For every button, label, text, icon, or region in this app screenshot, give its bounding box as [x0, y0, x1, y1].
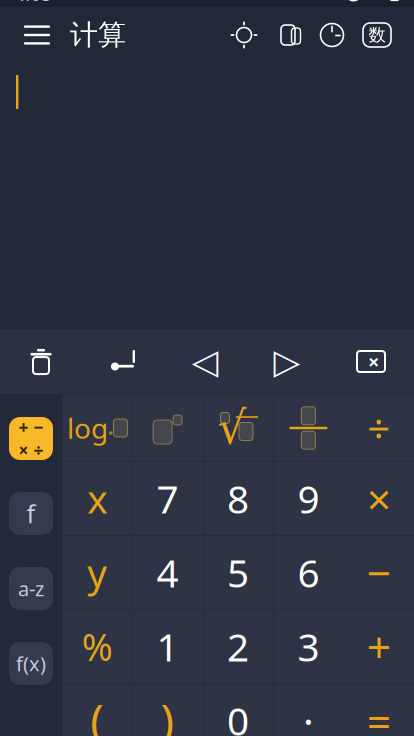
button[interactable]: =	[344, 684, 414, 736]
staticText: +	[367, 618, 391, 675]
staticText: ÷	[367, 401, 390, 454]
button[interactable]: f(x)	[0, 626, 62, 701]
staticText: ×	[367, 470, 391, 527]
staticText: 2	[227, 621, 249, 672]
staticText: 9	[297, 473, 319, 524]
button[interactable]: )	[132, 684, 203, 736]
staticText: x	[87, 473, 107, 524]
staticText: √	[217, 402, 246, 454]
button[interactable]: Menu	[14, 12, 60, 58]
button[interactable]: Move left	[164, 329, 246, 393]
staticText: 4	[157, 547, 179, 598]
button[interactable]: 3	[273, 610, 344, 683]
staticText: log	[67, 409, 108, 447]
button[interactable]: 0	[203, 684, 273, 736]
button[interactable]: f	[0, 476, 62, 551]
staticText: × ÷	[18, 438, 43, 461]
staticText: f	[26, 497, 35, 530]
button[interactable]: + −	[0, 401, 62, 476]
button[interactable]: (	[62, 684, 132, 736]
button[interactable]: √	[203, 395, 273, 461]
staticText: ×	[368, 348, 379, 375]
staticText: =	[367, 692, 391, 736]
button[interactable]: y	[62, 536, 132, 609]
button[interactable]: 5	[203, 536, 273, 609]
button[interactable]: −	[344, 536, 414, 609]
staticText: %	[82, 622, 113, 671]
button[interactable]: Brightness	[222, 12, 266, 58]
button[interactable]: log	[62, 395, 132, 461]
button[interactable]: 8	[203, 462, 273, 535]
button[interactable]: ×	[344, 462, 414, 535]
button[interactable]: x	[62, 462, 132, 535]
button[interactable]: 6	[273, 536, 344, 609]
staticText: f(x)	[16, 650, 46, 677]
staticText: 数	[368, 24, 385, 46]
button[interactable]: Rotate	[266, 12, 310, 58]
staticText: ·	[303, 694, 314, 736]
button[interactable]: Clear	[0, 329, 82, 393]
staticText: )	[161, 690, 175, 736]
button[interactable]: 1	[132, 610, 203, 683]
button[interactable]: 4	[132, 536, 203, 609]
staticText: 4:03	[14, 0, 52, 6]
button[interactable]	[132, 395, 203, 461]
button[interactable]: ·	[273, 684, 344, 736]
button[interactable]: Backspace	[328, 329, 414, 393]
button[interactable]: +	[344, 610, 414, 683]
button[interactable]: 7	[132, 462, 203, 535]
button[interactable]: 9	[273, 462, 344, 535]
button[interactable]: Move right	[246, 329, 328, 393]
button[interactable]	[273, 395, 344, 461]
staticText: −	[367, 544, 391, 601]
staticText: y	[87, 547, 107, 598]
button[interactable]: 2	[203, 610, 273, 683]
staticText: 计算	[70, 18, 126, 52]
staticText: ▷	[273, 342, 300, 381]
staticText: 0	[227, 695, 249, 736]
staticText: 7	[157, 473, 179, 524]
button[interactable]: ÷	[344, 395, 414, 461]
button[interactable]: 计算	[60, 10, 126, 60]
button[interactable]: Enter	[82, 329, 164, 393]
staticText: 1	[157, 621, 179, 672]
staticText: 5	[227, 547, 249, 598]
staticText: ◁	[191, 342, 218, 381]
button[interactable]: %	[62, 610, 132, 683]
staticText: (	[90, 690, 104, 736]
staticText: 6	[297, 547, 319, 598]
staticText: 8	[227, 473, 249, 524]
button[interactable]: Number mode	[354, 12, 400, 58]
staticText: a-z	[18, 575, 44, 602]
button[interactable]: a-z	[0, 551, 62, 626]
staticText: + −	[18, 415, 43, 438]
staticText: 3	[297, 621, 319, 672]
button[interactable]: History	[310, 12, 354, 58]
